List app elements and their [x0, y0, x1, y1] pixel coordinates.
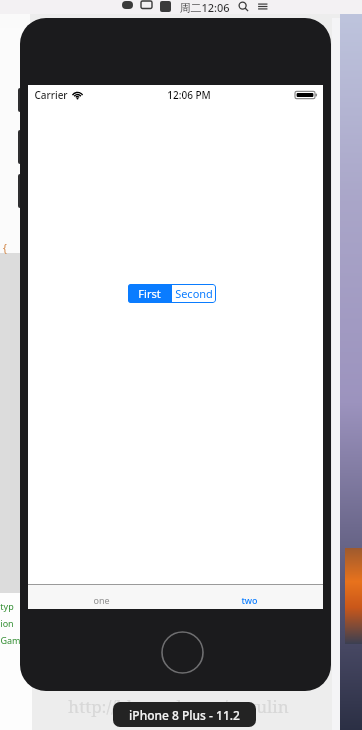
staticText: ion: [0, 617, 14, 629]
button[interactable]: Home: [161, 631, 204, 674]
staticText: iPhone 8 Plus - 11.2: [129, 707, 240, 723]
staticText: typ: [0, 600, 14, 612]
staticText: Gam: [0, 634, 21, 646]
button[interactable]: one: [28, 585, 175, 609]
staticText: http://blog.csdn.net/ruyulin: [68, 695, 289, 718]
staticText: one: [93, 594, 110, 606]
staticText: 12:06 PM: [167, 88, 211, 102]
staticText: Carrier: [34, 88, 68, 102]
button[interactable]: two: [175, 585, 323, 609]
staticText: {: [3, 241, 7, 255]
staticText: Second: [175, 286, 213, 301]
button[interactable]: Second: [172, 284, 216, 303]
button[interactable]: First: [128, 284, 171, 303]
staticText: two: [241, 594, 258, 606]
staticText: First: [138, 286, 161, 301]
staticText: 周二12:06: [179, 0, 230, 13]
button[interactable]: iPhone 8 Plus - 11.2: [113, 702, 256, 727]
